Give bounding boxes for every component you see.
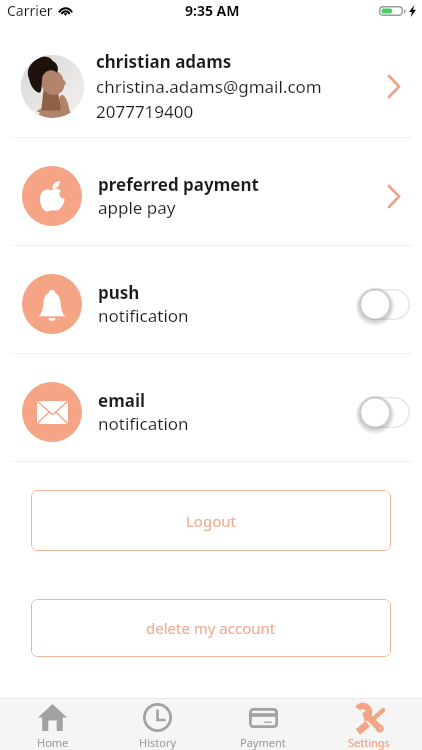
staticText: apple pay: [98, 196, 176, 219]
button[interactable]: email: [0, 354, 422, 461]
staticText: notification: [98, 304, 189, 327]
staticText: Payment: [240, 735, 286, 750]
button[interactable]: Toggle notification: [360, 397, 410, 428]
button[interactable]: Toggle notification: [360, 289, 410, 320]
staticText: notification: [98, 412, 189, 435]
button[interactable]: Settings: [316, 700, 422, 750]
staticText: Logout: [186, 511, 236, 531]
staticText: preferred payment: [98, 173, 259, 196]
staticText: christina.adams@gmail.com: [96, 75, 322, 98]
staticText: 9:35 AM: [185, 1, 240, 20]
button[interactable]: christian adams: [0, 30, 422, 137]
staticText: Home: [37, 735, 69, 750]
button[interactable]: Home: [0, 700, 105, 750]
staticText: delete my account: [146, 618, 276, 638]
button[interactable]: preferred payment: [0, 138, 422, 245]
staticText: History: [139, 735, 177, 750]
staticText: Settings: [348, 735, 390, 750]
button[interactable]: delete my account: [31, 599, 391, 657]
button[interactable]: Logout: [31, 490, 391, 551]
staticText: Carrier: [7, 1, 53, 20]
button[interactable]: push: [0, 246, 422, 353]
button[interactable]: Payment: [210, 700, 316, 750]
staticText: 2077719400: [96, 100, 194, 123]
button[interactable]: History: [105, 700, 210, 750]
staticText: push: [98, 281, 140, 304]
staticText: email: [98, 389, 146, 412]
staticText: christian adams: [96, 50, 232, 73]
